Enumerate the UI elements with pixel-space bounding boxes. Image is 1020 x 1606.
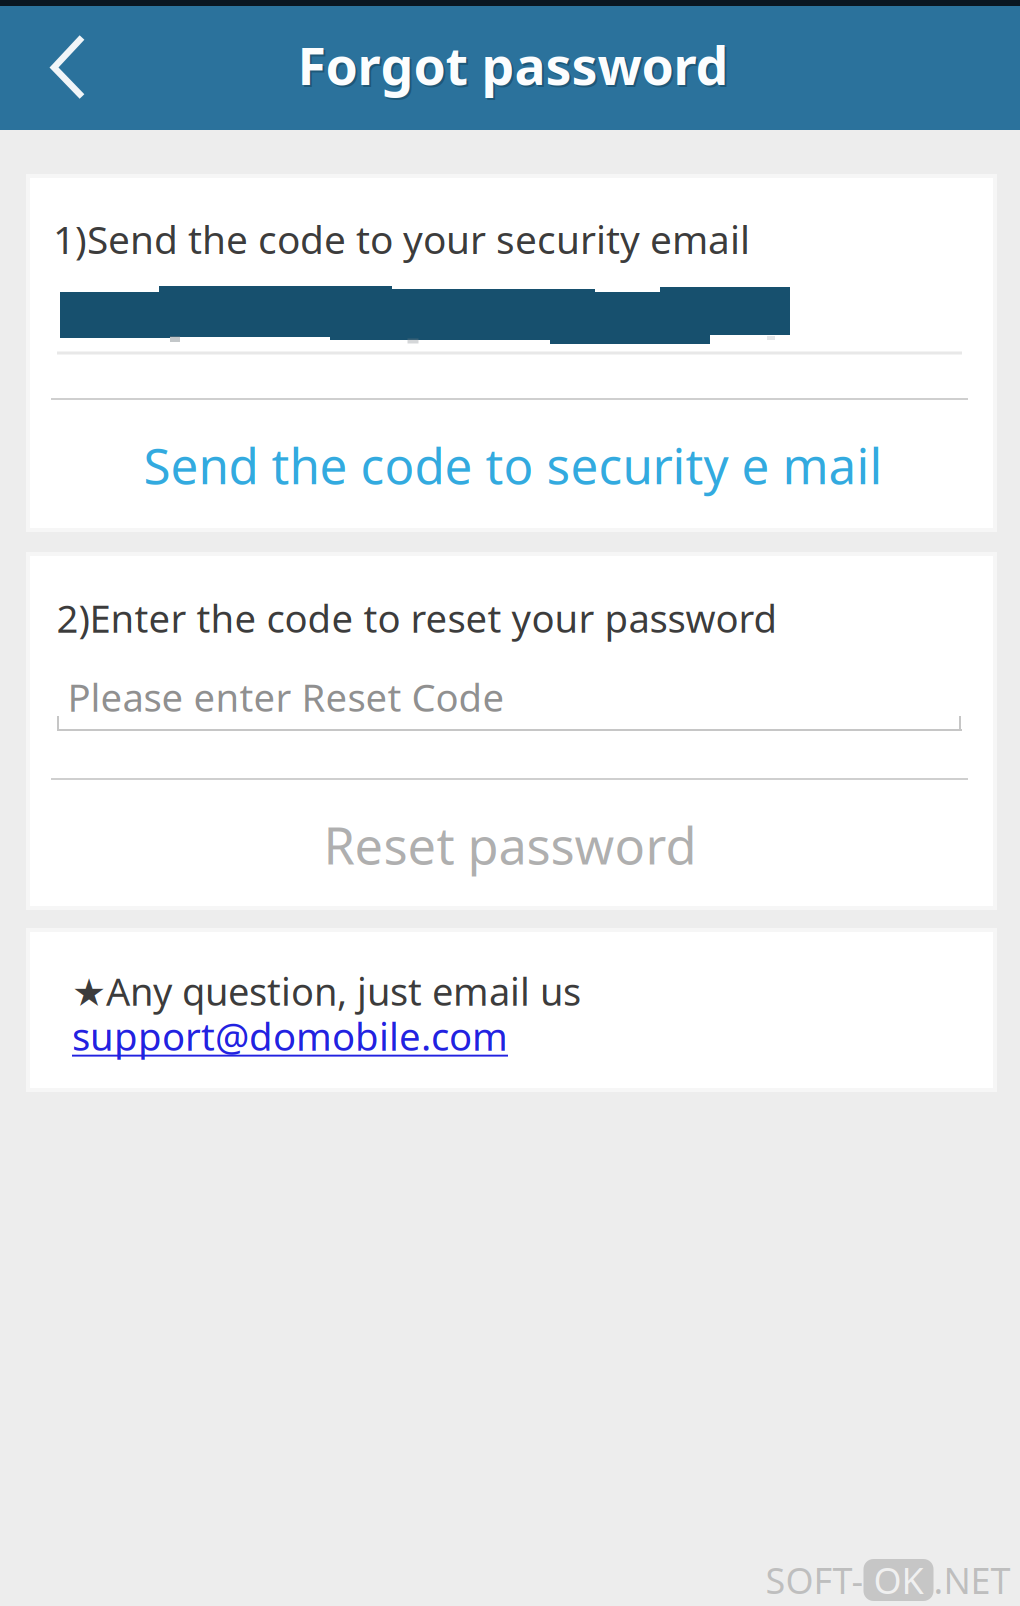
staticText: 2)Enter the code to reset your password [56, 592, 777, 644]
button[interactable]: Reset password [60, 790, 960, 900]
button[interactable]: Back [9, 6, 129, 130]
button[interactable]: Send the code to security e mail [63, 410, 963, 520]
staticText: 1)Send the code to your security email [53, 213, 750, 265]
staticText: Send the code to security e mail [143, 431, 882, 499]
staticText: Please enter Reset Code [67, 671, 504, 723]
staticText: .NET [933, 1555, 1010, 1604]
staticText: SOFT- [765, 1555, 863, 1604]
staticText: Forgot password [297, 30, 728, 100]
staticText: Reset password [323, 811, 696, 879]
button[interactable]: support@domobile.com [72, 1011, 672, 1061]
staticText: OK [873, 1555, 923, 1604]
staticText: ★Any question, just email us [72, 965, 581, 1017]
staticText: support@domobile.com [72, 1010, 508, 1062]
